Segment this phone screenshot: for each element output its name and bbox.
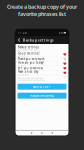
staticText: favorite phrases list (18, 10, 66, 17)
button[interactable]: Thank you very much (15, 57, 68, 61)
button[interactable]: Good morning! (15, 52, 68, 57)
staticText: Хорошего дня! (18, 74, 29, 76)
staticText: Backup settings (18, 45, 39, 49)
staticText: Thank you very much (18, 57, 45, 61)
staticText: Have a nice day (18, 70, 38, 74)
staticText: Как дела? (18, 65, 26, 66)
staticText: Save your favorite phrases (18, 49, 38, 51)
staticText: RESTORE FROM FILE (30, 94, 53, 97)
staticText: phrases when you change the device (18, 79, 45, 81)
staticText: See you tomorrow (18, 66, 43, 70)
staticText: Create a backup copy of your (7, 3, 77, 10)
button[interactable]: Have a nice day (15, 70, 68, 75)
button[interactable]: SAVE A COPY (17, 84, 66, 90)
button[interactable]: How are you today? (15, 61, 68, 66)
button[interactable]: See you tomorrow (15, 66, 68, 70)
staticText: Make a backup to keep your favorite (18, 77, 43, 79)
button[interactable]: Back (18, 38, 20, 42)
button[interactable]: RESTORE FROM FILE (17, 93, 66, 99)
staticText: SAVE A COPY (33, 85, 51, 88)
staticText: Good morning! (18, 52, 40, 55)
staticText: 4G (59, 31, 63, 34)
staticText: Backup settings (23, 37, 54, 43)
staticText: 11:24 (18, 31, 27, 34)
staticText: How are you today? (18, 61, 44, 64)
staticText: Доброе утро! (18, 55, 28, 57)
